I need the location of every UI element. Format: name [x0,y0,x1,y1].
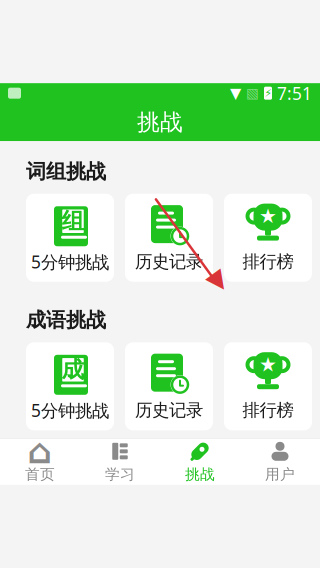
button[interactable]: 学习 [80,439,160,485]
staticText: 成 [61,356,84,384]
button[interactable]: ★ [224,194,312,282]
button[interactable]: 组 [26,194,114,282]
staticText: 5分钟挑战 [31,399,109,422]
staticText: 7:51 [277,82,312,105]
staticText: 成语挑战 [26,308,106,332]
staticText: 组 [61,207,84,235]
staticText: 学习 [105,465,135,483]
button[interactable]: 挑战 [160,439,240,485]
staticText: 排行榜 [242,400,293,421]
staticText: 用户 [265,465,295,483]
staticText: ⚡︎ [264,87,271,99]
staticText: ★ [259,205,277,227]
staticText: ▼ [230,85,241,101]
button[interactable]: ⌂ [0,439,80,485]
button[interactable]: 历史记录 [125,342,213,430]
button[interactable]: ★ [224,342,312,430]
staticText: ▼ [207,266,226,294]
button[interactable]: 历史记录 [125,194,213,282]
button[interactable]: 成 [26,342,114,430]
button[interactable]: 用户 [240,439,320,485]
staticText: 历史记录 [135,400,203,421]
staticText: 挑战 [137,108,183,136]
staticText: ⌂ [27,432,52,471]
staticText: 排行榜 [242,251,293,272]
staticText: 5分钟挑战 [31,250,109,273]
staticText: 首页 [25,465,55,483]
staticText: 词组挑战 [26,159,106,184]
staticText: ▧ [246,86,259,101]
staticText: 挑战 [185,465,215,483]
staticText: ★ [259,353,277,376]
staticText: 历史记录 [135,251,203,272]
